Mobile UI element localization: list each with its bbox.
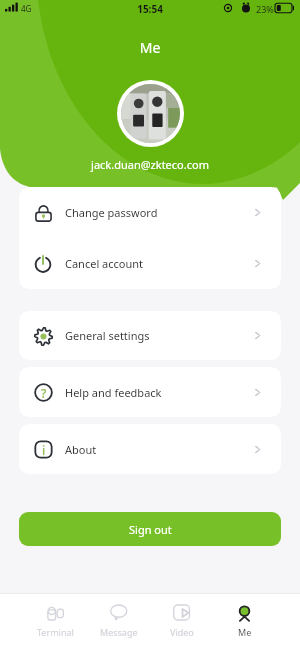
- staticText: 23%: [256, 3, 274, 15]
- staticText: Change password: [65, 205, 158, 220]
- staticText: Me: [0, 38, 300, 57]
- staticText: Sign out: [129, 522, 172, 537]
- staticText: 15:54: [0, 2, 300, 16]
- button[interactable]: Video: [150, 594, 213, 638]
- button[interactable]: Me: [213, 594, 276, 638]
- staticText: General settings: [65, 328, 150, 343]
- button[interactable]: ?: [19, 367, 281, 417]
- staticText: Cancel account: [65, 256, 144, 271]
- button[interactable]: Message: [87, 594, 150, 638]
- staticText: Video: [170, 626, 194, 638]
- button[interactable]: Change password: [19, 187, 281, 238]
- staticText: Me: [238, 626, 252, 638]
- staticText: ?: [41, 385, 47, 401]
- button[interactable]: i: [19, 424, 281, 474]
- staticText: Help and feedback: [65, 385, 162, 400]
- button[interactable]: Cancel account: [19, 238, 281, 289]
- staticText: jack.duan@zkteco.com: [0, 157, 300, 172]
- staticText: Terminal: [37, 626, 74, 638]
- staticText: Message: [100, 626, 138, 638]
- button[interactable]: Sign out: [19, 512, 281, 546]
- button[interactable]: General settings: [19, 311, 281, 360]
- staticText: i: [42, 442, 46, 458]
- button[interactable]: Terminal: [24, 594, 87, 638]
- staticText: About: [65, 442, 97, 457]
- staticText: 4G: [21, 3, 32, 14]
